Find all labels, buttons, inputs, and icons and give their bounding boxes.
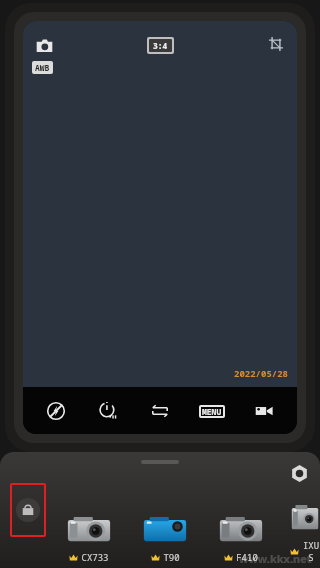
staticText: F410 bbox=[236, 551, 258, 563]
button[interactable]: Settings bbox=[286, 460, 312, 486]
button[interactable]: T90 bbox=[138, 514, 192, 563]
staticText: MENU bbox=[202, 406, 222, 417]
button[interactable]: Video mode bbox=[245, 392, 283, 430]
staticText: T90 bbox=[163, 551, 180, 563]
button[interactable]: Drag handle bbox=[141, 460, 179, 464]
button[interactable]: Switch bbox=[141, 392, 179, 430]
button[interactable]: Shop bbox=[10, 483, 46, 537]
staticText: 2022/05/28 bbox=[234, 367, 289, 379]
button[interactable]: CX733 bbox=[62, 514, 116, 563]
staticText: CX733 bbox=[81, 551, 109, 563]
button[interactable]: MENU bbox=[193, 392, 231, 430]
button[interactable]: Flash off bbox=[37, 392, 75, 430]
staticText: IXUS bbox=[302, 539, 320, 563]
button[interactable]: F410 bbox=[214, 514, 268, 563]
button[interactable]: 3:4 bbox=[147, 37, 174, 54]
staticText: AWB bbox=[35, 62, 50, 73]
button[interactable]: Shooting mode bbox=[31, 32, 57, 58]
staticText: www.kkx.net bbox=[239, 551, 312, 566]
button[interactable]: AWB bbox=[32, 61, 53, 74]
button[interactable]: Self timer off bbox=[89, 392, 127, 430]
button[interactable]: IXUS bbox=[290, 502, 320, 563]
staticText: 3:4 bbox=[153, 40, 168, 51]
button[interactable]: Crop bbox=[264, 32, 288, 56]
